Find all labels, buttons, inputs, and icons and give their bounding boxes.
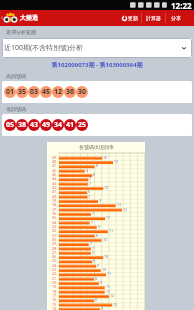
staticText: 計算器 bbox=[146, 15, 161, 21]
staticText: 9 bbox=[100, 280, 103, 285]
staticText: 30 bbox=[78, 87, 87, 97]
button[interactable]: 近100期(不含特別號)分析 bbox=[2, 38, 192, 58]
staticText: 8 bbox=[95, 276, 98, 281]
staticText: 11 bbox=[106, 289, 111, 294]
staticText: 48 bbox=[52, 159, 57, 164]
staticText: 26 bbox=[52, 254, 57, 259]
staticText: 34 bbox=[52, 220, 57, 225]
staticText: 7 bbox=[89, 181, 92, 186]
staticText: 15 bbox=[123, 207, 128, 212]
staticText: 7 bbox=[92, 250, 95, 255]
staticText: 9 bbox=[99, 198, 102, 203]
staticText: 11 bbox=[106, 284, 111, 289]
staticText: 11 bbox=[106, 215, 111, 220]
staticText: 12:22 bbox=[171, 0, 192, 10]
staticText: 12 bbox=[113, 302, 118, 307]
button[interactable]: 分享 bbox=[166, 10, 186, 26]
staticText: 13 bbox=[114, 159, 119, 164]
staticText: 25 bbox=[78, 120, 87, 130]
staticText: 38 bbox=[52, 202, 57, 207]
staticText: 近100期(不含特別號)分析 bbox=[4, 43, 84, 53]
staticText: 38 bbox=[18, 120, 27, 130]
staticText: 13 bbox=[117, 202, 122, 207]
staticText: 第102000073期 - 第103000364期 bbox=[0, 61, 194, 69]
staticText: 7 bbox=[90, 241, 93, 246]
staticText: 41 bbox=[66, 120, 75, 130]
staticText: 33 bbox=[52, 224, 57, 229]
staticText: 43 bbox=[30, 120, 39, 130]
staticText: 高頻號碼 bbox=[6, 73, 26, 79]
staticText: 36 bbox=[52, 211, 57, 216]
staticText: 40 bbox=[52, 194, 57, 199]
staticText: 10 bbox=[103, 237, 108, 242]
staticText: 19 bbox=[52, 284, 57, 289]
button[interactable]: 更新 bbox=[119, 10, 141, 26]
staticText: 11 bbox=[109, 228, 114, 233]
staticText: 35 bbox=[52, 215, 57, 220]
staticText: 12 bbox=[54, 87, 63, 97]
staticText: 23 bbox=[52, 267, 57, 272]
staticText: 36 bbox=[66, 87, 75, 97]
staticText: 28 bbox=[52, 246, 57, 251]
staticText: 7 bbox=[89, 176, 92, 181]
staticText: 37 bbox=[52, 207, 57, 212]
staticText: 9 bbox=[98, 224, 101, 229]
staticText: 8 bbox=[93, 172, 96, 177]
staticText: 30 bbox=[52, 237, 57, 242]
staticText: 7 bbox=[88, 194, 91, 199]
staticText: 10 bbox=[102, 267, 107, 272]
staticText: 45 bbox=[42, 87, 51, 97]
staticText: 43 bbox=[52, 181, 57, 186]
staticText: 49 bbox=[52, 155, 57, 160]
staticText: 選擇分析範圍 bbox=[6, 29, 36, 35]
button[interactable]: 計算器 bbox=[142, 10, 165, 26]
staticText: 6 bbox=[86, 168, 89, 173]
staticText: 22 bbox=[52, 271, 57, 276]
staticText: 8 bbox=[95, 297, 98, 302]
staticText: 24 bbox=[52, 263, 57, 268]
staticText: 34 bbox=[54, 120, 63, 130]
staticText: 44 bbox=[52, 176, 57, 181]
button[interactable]: 01 bbox=[2, 81, 192, 103]
staticText: 35 bbox=[18, 87, 27, 97]
staticText: 6 bbox=[88, 189, 91, 194]
staticText: 31 bbox=[52, 233, 57, 238]
staticText: 14 bbox=[52, 306, 57, 310]
staticText: 21 bbox=[52, 276, 57, 281]
staticText: 10 bbox=[103, 155, 108, 160]
staticText: 39 bbox=[52, 198, 57, 203]
staticText: 9 bbox=[97, 263, 100, 268]
staticText: 8 bbox=[93, 258, 96, 263]
staticText: 各號碼出現頻率 bbox=[79, 144, 114, 150]
staticText: 7 bbox=[91, 220, 94, 225]
staticText: 01 bbox=[6, 87, 15, 97]
staticText: 32 bbox=[52, 228, 57, 233]
staticText: 47 bbox=[52, 163, 57, 168]
staticText: 分享 bbox=[171, 15, 181, 21]
staticText: 42 bbox=[52, 185, 57, 190]
button[interactable]: Back bbox=[0, 10, 4, 26]
staticText: 10 bbox=[104, 185, 109, 190]
staticText: 05 bbox=[6, 120, 15, 130]
staticText: 20 bbox=[52, 280, 57, 285]
staticText: 11 bbox=[107, 271, 112, 276]
staticText: 8 bbox=[96, 233, 99, 238]
staticText: 18 bbox=[52, 289, 57, 294]
staticText: 29 bbox=[52, 241, 57, 246]
staticText: 8 bbox=[96, 163, 99, 168]
staticText: 15 bbox=[52, 302, 57, 307]
staticText: 10 bbox=[104, 254, 109, 259]
staticText: 更新 bbox=[128, 15, 138, 21]
staticText: 低頻號碼 bbox=[6, 106, 26, 112]
button[interactable]: 05 bbox=[2, 114, 192, 136]
staticText: 9 bbox=[101, 306, 104, 310]
staticText: 49 bbox=[42, 120, 51, 130]
staticText: 大樂透 bbox=[20, 14, 38, 22]
staticText: 7 bbox=[92, 211, 95, 216]
staticText: 12 bbox=[110, 293, 115, 298]
staticText: 03 bbox=[30, 87, 39, 97]
staticText: 41 bbox=[52, 189, 57, 194]
staticText: 45 bbox=[52, 172, 57, 177]
staticText: 25 bbox=[52, 258, 57, 263]
staticText: 7 bbox=[92, 246, 95, 251]
